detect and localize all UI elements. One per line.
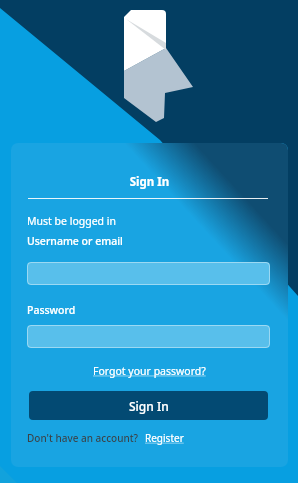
staticText: Sign In bbox=[11, 174, 288, 190]
button[interactable]: Forgot your password? bbox=[93, 364, 206, 378]
staticText: Don't have an account? bbox=[27, 431, 139, 445]
button[interactable]: Register bbox=[145, 431, 184, 445]
staticText: Sign In bbox=[129, 398, 169, 414]
button[interactable] bbox=[27, 325, 270, 348]
staticText: Must be logged in bbox=[27, 214, 116, 228]
button[interactable]: Sign In bbox=[29, 391, 268, 420]
button[interactable] bbox=[27, 262, 270, 285]
staticText: Password bbox=[27, 303, 76, 317]
staticText: Username or email bbox=[27, 234, 123, 248]
